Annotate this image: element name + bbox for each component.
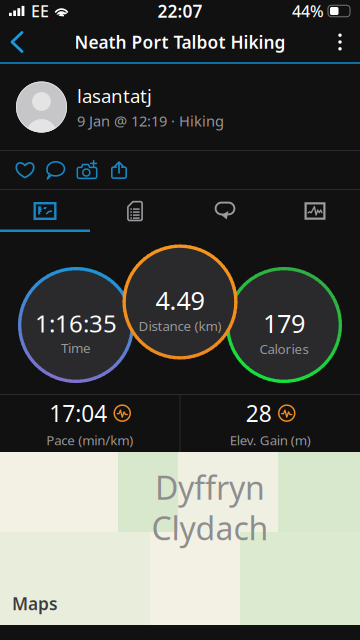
button[interactable]: Comment	[40, 151, 70, 189]
staticText: 17:04	[49, 398, 107, 428]
button[interactable]: Back	[0, 22, 38, 62]
staticText: 179	[263, 306, 305, 340]
staticText: Calories	[259, 340, 308, 358]
button[interactable]: Map	[0, 190, 90, 231]
staticText: Maps	[12, 592, 58, 615]
button[interactable]: More options	[317, 22, 360, 62]
staticText: Dyffryn	[155, 466, 265, 508]
staticText: 44%	[292, 0, 324, 22]
staticText: Neath Port Talbot Hiking	[74, 30, 285, 53]
staticText: Distance (km)	[138, 317, 221, 335]
staticText: Elev. Gain (m)	[230, 431, 311, 449]
staticText: 1:16:35	[35, 307, 117, 339]
staticText: 9 Jan @ 12:19 · Hiking	[77, 111, 224, 131]
staticText: Pace (min/km)	[46, 431, 133, 449]
button[interactable]: Laps	[180, 190, 270, 231]
button[interactable]: Add photo	[70, 151, 104, 189]
staticText: 22:07	[157, 0, 202, 22]
button[interactable]: Heart rate	[270, 190, 360, 231]
button[interactable]: Like	[10, 151, 40, 189]
button[interactable]: Share	[104, 151, 134, 189]
staticText: lasantatj	[77, 83, 152, 108]
button[interactable]: Details	[90, 190, 180, 231]
staticText: 4.49	[155, 283, 204, 317]
staticText: EE	[31, 0, 49, 22]
staticText: Clydach	[151, 506, 268, 549]
staticText: 28	[246, 398, 272, 428]
staticText: Time	[61, 339, 91, 357]
